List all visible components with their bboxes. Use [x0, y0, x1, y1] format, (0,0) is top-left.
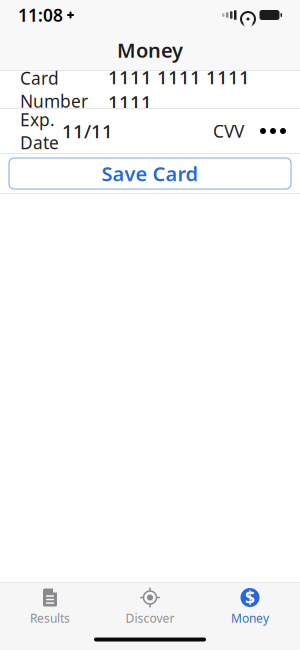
staticText: $	[245, 586, 255, 609]
staticText: Date	[20, 131, 59, 154]
staticText: 1111 1111 1111 1111	[108, 65, 250, 114]
staticText: 11/11	[62, 119, 113, 143]
staticText: Save Card	[101, 160, 198, 187]
staticText: Exp.	[20, 108, 55, 131]
staticText: CVV	[213, 119, 244, 142]
staticText: Card Number	[20, 66, 88, 112]
staticText: Results	[30, 610, 70, 626]
staticText: 11:08	[18, 3, 63, 26]
button[interactable]: $	[200, 586, 300, 628]
staticText: Discover	[125, 610, 174, 626]
button[interactable]: Results	[0, 586, 100, 628]
button[interactable]: Save Card	[9, 158, 291, 189]
staticText: Money	[231, 610, 269, 626]
button[interactable]: Discover	[100, 586, 200, 628]
staticText: Money	[117, 37, 183, 63]
